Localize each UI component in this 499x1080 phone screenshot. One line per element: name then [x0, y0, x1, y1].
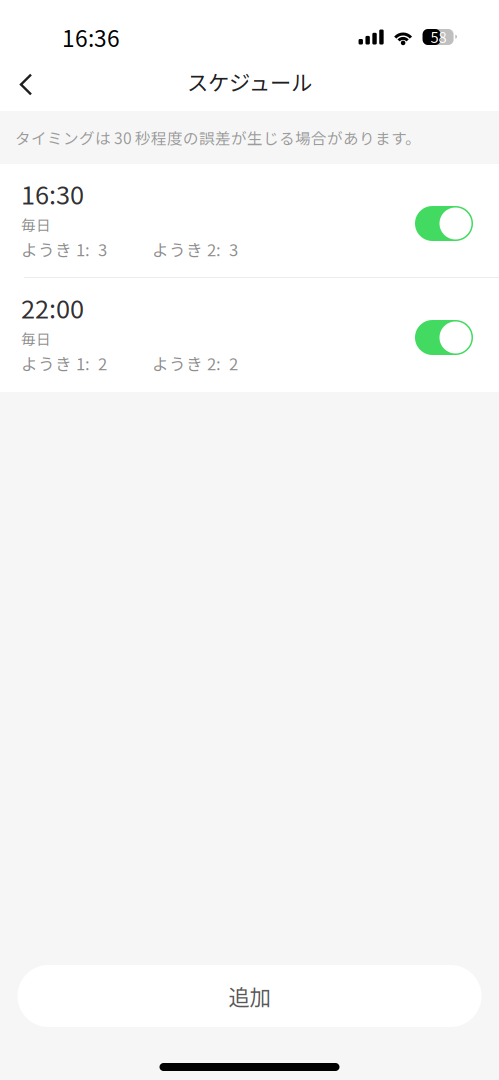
button[interactable]: 追加 — [17, 965, 481, 1027]
staticText: ようき 2: 3 — [152, 237, 238, 261]
staticText: ようき 2: 2 — [152, 351, 238, 375]
button[interactable]: Back — [0, 60, 52, 108]
button[interactable]: 16:30 — [0, 164, 499, 277]
staticText: 毎日 — [21, 214, 51, 235]
staticText: 追加 — [228, 981, 270, 1011]
staticText: タイミングは 30 秒程度の誤差が生じる場合があります。 — [15, 126, 421, 149]
staticText: 16:30 — [21, 175, 84, 212]
staticText: 58 — [431, 26, 447, 47]
staticText: 22:00 — [21, 289, 84, 326]
staticText: ようき 1: 3 — [21, 237, 107, 261]
staticText: スケジュール — [187, 66, 312, 97]
staticText: 16:36 — [62, 21, 120, 53]
staticText: ようき 1: 2 — [21, 351, 107, 375]
button[interactable]: 22:00 — [0, 278, 499, 392]
staticText: 毎日 — [21, 328, 51, 349]
